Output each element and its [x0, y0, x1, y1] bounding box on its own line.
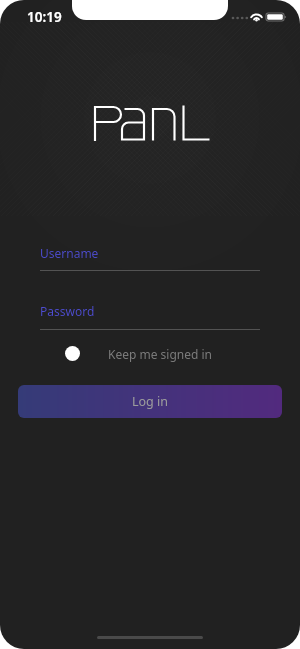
staticText: 10:19: [27, 8, 62, 26]
staticText: Password: [40, 303, 95, 319]
button[interactable]: Keep me signed in: [65, 340, 212, 367]
staticText: Log in: [132, 393, 169, 410]
staticText: Username: [40, 245, 99, 261]
button[interactable]: Log in: [18, 385, 282, 418]
staticText: Keep me signed in: [108, 346, 212, 362]
